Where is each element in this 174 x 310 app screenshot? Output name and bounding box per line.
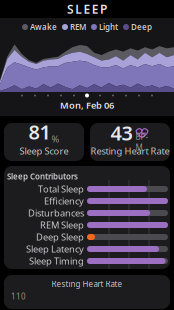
staticText: Sleep Score bbox=[19, 145, 68, 157]
staticText: L bbox=[75, 1, 82, 17]
staticText: 110 bbox=[11, 291, 26, 302]
staticText: Deep bbox=[131, 22, 152, 32]
staticText: Deep Sleep bbox=[36, 231, 84, 243]
staticText: Resting Heart Rate bbox=[51, 279, 122, 289]
staticText: Resting Heart Rate bbox=[90, 145, 169, 157]
staticText: REM Sleep bbox=[40, 219, 84, 231]
staticText: S bbox=[67, 1, 74, 17]
staticText: P bbox=[100, 1, 107, 17]
staticText: Light bbox=[99, 22, 118, 32]
staticText: Mon, Feb 06 bbox=[60, 99, 114, 111]
staticText: Sleep Timing bbox=[29, 255, 84, 267]
staticText: % bbox=[51, 133, 59, 145]
staticText: Efficiency bbox=[44, 195, 84, 207]
staticText: Awake bbox=[30, 22, 57, 32]
button[interactable]: 81 bbox=[4, 123, 84, 161]
staticText: 43 bbox=[110, 119, 132, 146]
staticText: BPM bbox=[135, 131, 148, 153]
staticText: 81 bbox=[28, 118, 50, 145]
staticText: REM bbox=[70, 22, 86, 32]
staticText: E bbox=[92, 1, 99, 17]
button[interactable]: 43 bbox=[90, 123, 170, 161]
staticText: Disturbances bbox=[28, 207, 84, 219]
staticText: Total Sleep bbox=[38, 183, 84, 195]
staticText: Sleep Contributors bbox=[7, 171, 78, 182]
staticText: Sleep Latency bbox=[26, 243, 84, 255]
staticText: E bbox=[83, 1, 90, 17]
